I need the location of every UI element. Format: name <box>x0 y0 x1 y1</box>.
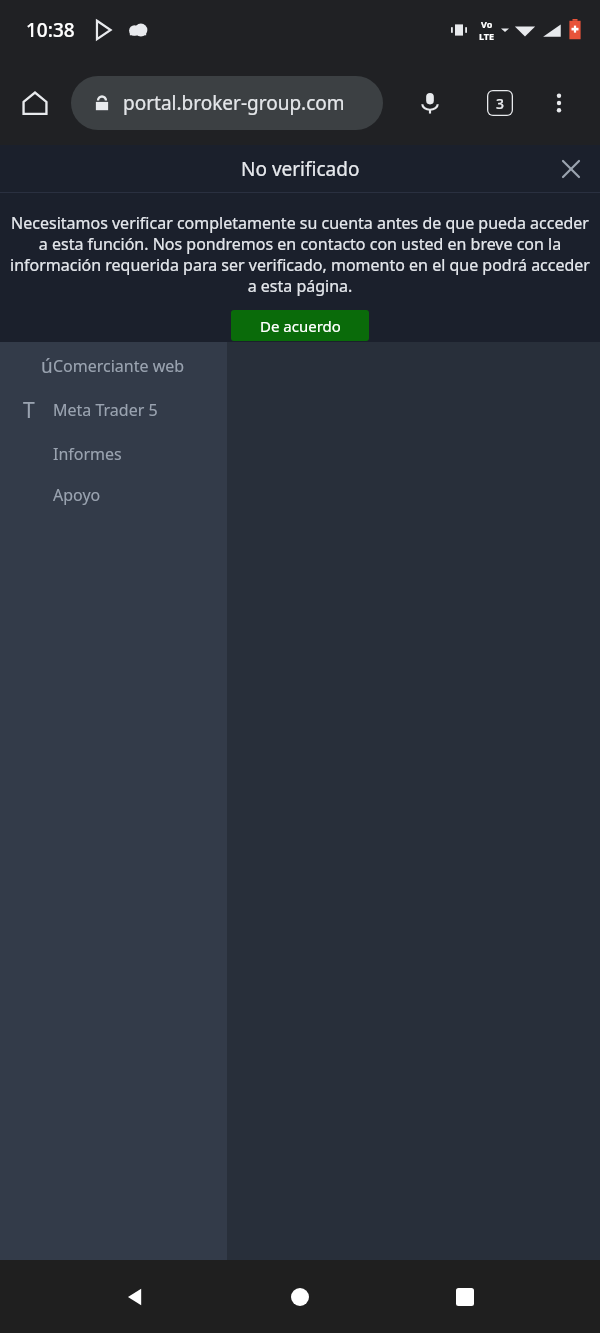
staticText: LTE <box>479 30 495 42</box>
button[interactable]: Depósito <box>0 195 227 222</box>
staticText: portal.broker-group.com <box>123 90 345 116</box>
staticText: Meta Trader 5 <box>53 399 158 421</box>
button[interactable]: Apoyo <box>0 478 227 512</box>
staticText: Informes <box>53 443 122 465</box>
staticText: Vo <box>481 18 493 30</box>
staticText: 3 <box>496 94 505 113</box>
staticText: Transferir <box>53 252 126 274</box>
button[interactable]: Tabs <box>477 80 523 126</box>
button[interactable]: T <box>0 391 227 429</box>
button[interactable]: portal.broker-group.com <box>71 76 383 130</box>
staticText: Comerciante web <box>53 355 185 377</box>
staticText: ú <box>41 353 53 379</box>
button[interactable]: Voice search <box>407 80 453 126</box>
button[interactable]: ú <box>0 347 227 385</box>
button[interactable]: Home <box>270 1267 330 1327</box>
staticText: 10:38 <box>26 17 75 43</box>
staticText: Necesitamos verificar completamente su c… <box>7 212 593 297</box>
button[interactable]: Informes <box>0 437 227 471</box>
staticText: No verificado <box>241 156 360 182</box>
staticText: Retiro <box>53 225 98 247</box>
staticText: De acuerdo <box>260 316 341 336</box>
button[interactable]: De acuerdo <box>231 310 369 341</box>
button[interactable]: Recents <box>435 1267 495 1327</box>
staticText: T <box>23 396 35 425</box>
button[interactable]: Home <box>12 80 58 126</box>
staticText: Depósito <box>53 198 121 220</box>
button[interactable]: Close <box>552 150 590 188</box>
button[interactable]: Transferir <box>0 249 227 277</box>
button[interactable]: Retiro <box>0 222 227 249</box>
button[interactable]: Back <box>105 1267 165 1327</box>
staticText: Apoyo <box>53 484 101 506</box>
button[interactable]: More options <box>536 80 582 126</box>
